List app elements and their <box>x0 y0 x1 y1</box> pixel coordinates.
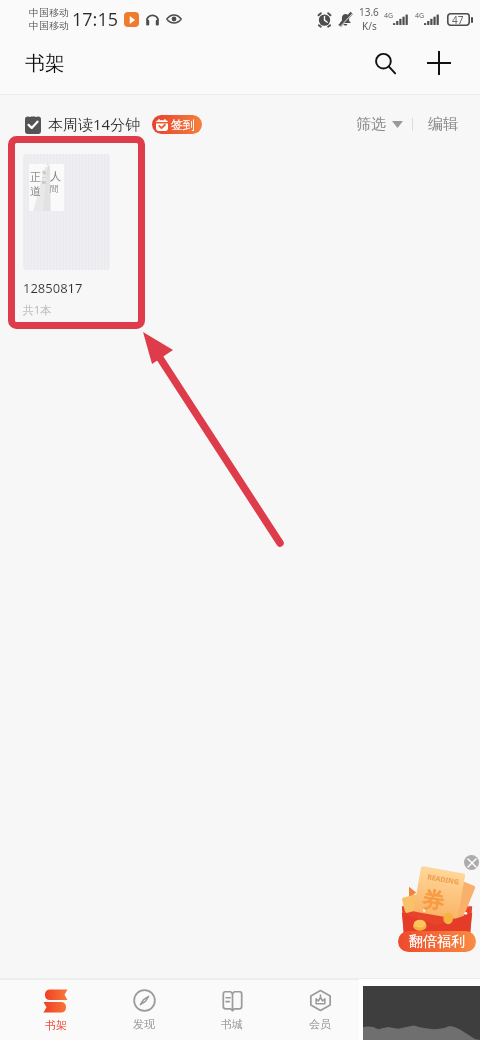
staticText: READING <box>426 872 460 888</box>
staticText: 筛选 <box>356 115 386 134</box>
staticText: 书架 <box>25 51 65 76</box>
staticText: 12850817 <box>23 279 83 297</box>
button[interactable]: 书城 <box>188 981 276 1039</box>
button[interactable]: 签到 <box>152 115 202 134</box>
staticText: K/s <box>362 19 377 33</box>
button[interactable]: 会员 <box>276 981 364 1039</box>
staticText: 部 <box>42 180 46 185</box>
staticText: 13.6 <box>359 5 379 19</box>
staticText: 4G <box>384 11 394 21</box>
staticText: 人 <box>50 169 61 183</box>
staticText: 书城 <box>221 1017 243 1031</box>
button[interactable]: Add book <box>416 40 462 86</box>
staticText: 中国移动 <box>29 6 69 19</box>
staticText: 第 <box>42 170 46 175</box>
staticText: 共1本 <box>23 302 52 317</box>
staticText: 券 <box>420 886 446 916</box>
button[interactable]: 书架 <box>11 981 100 1040</box>
staticText: 4G <box>415 11 425 21</box>
staticText: 发现 <box>133 1017 155 1031</box>
button[interactable]: Close promotion <box>464 855 479 870</box>
staticText: 签到 <box>171 117 195 132</box>
staticText: 翻倍福利 <box>409 933 465 951</box>
staticText: 编辑 <box>428 115 458 134</box>
staticText: 道 <box>30 184 41 198</box>
staticText: 17:15 <box>72 7 119 32</box>
staticText: 会员 <box>309 1017 331 1031</box>
staticText: 书架 <box>45 1018 67 1032</box>
staticText: 一 <box>42 175 46 180</box>
staticText: 47 <box>452 13 464 26</box>
button[interactable]: Search <box>362 40 408 86</box>
button[interactable]: 正 <box>23 154 110 317</box>
staticText: 中国移动 <box>29 19 69 32</box>
button[interactable]: 编辑 <box>428 109 458 140</box>
staticText: 正 <box>30 170 41 184</box>
button[interactable]: 筛选 <box>356 109 403 140</box>
staticText: 間 <box>50 183 59 194</box>
button[interactable]: 发现 <box>100 981 188 1039</box>
button[interactable]: 翻倍福利 <box>398 931 476 952</box>
staticText: 本周读14分钟 <box>48 114 141 134</box>
